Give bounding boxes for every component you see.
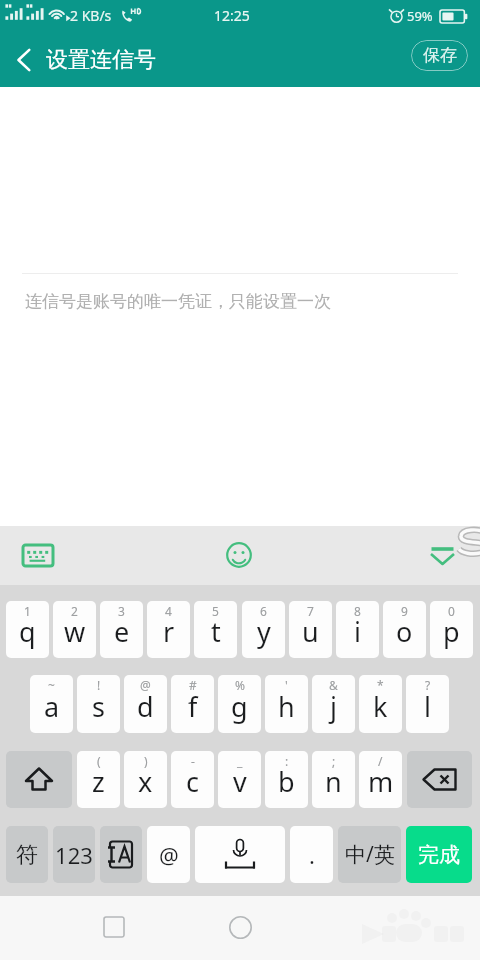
- staticText: 123: [55, 840, 93, 870]
- button[interactable]: -: [171, 751, 214, 808]
- staticText: :: [285, 753, 289, 769]
- staticText: n: [325, 763, 342, 800]
- staticText: b: [278, 763, 295, 800]
- staticText: @: [159, 840, 179, 870]
- button[interactable]: #: [171, 675, 214, 733]
- button[interactable]: 保存: [411, 40, 468, 71]
- button[interactable]: 4: [147, 601, 190, 658]
- staticText: j: [330, 688, 337, 725]
- button[interactable]: ?: [406, 675, 449, 733]
- button[interactable]: Emoji: [222, 538, 256, 572]
- button[interactable]: 符: [6, 826, 48, 883]
- staticText: t: [211, 613, 221, 650]
- staticText: 1: [24, 603, 31, 619]
- button[interactable]: 2: [53, 601, 96, 658]
- button[interactable]: 9: [383, 601, 426, 658]
- staticText: 2: [71, 603, 78, 619]
- button[interactable]: 0: [430, 601, 473, 658]
- staticText: ;: [332, 753, 336, 769]
- button[interactable]: *: [359, 675, 402, 733]
- button[interactable]: Back: [4, 40, 44, 80]
- staticText: #: [189, 677, 197, 693]
- staticText: p: [443, 613, 460, 650]
- staticText: 59%: [407, 7, 433, 25]
- button[interactable]: 中/英: [338, 826, 401, 883]
- staticText: 保存: [423, 45, 457, 66]
- button[interactable]: Recents: [94, 907, 134, 947]
- button[interactable]: &: [312, 675, 355, 733]
- button[interactable]: Backspace: [407, 751, 472, 808]
- button[interactable]: ;: [312, 751, 355, 808]
- staticText: z: [92, 763, 105, 800]
- button[interactable]: 1: [6, 601, 49, 658]
- staticText: 符: [16, 841, 38, 869]
- staticText: c: [186, 763, 199, 800]
- staticText: 9: [401, 603, 408, 619]
- staticText: h: [278, 688, 295, 725]
- button[interactable]: ~: [30, 675, 73, 733]
- button[interactable]: @: [124, 675, 167, 733]
- staticText: ~: [48, 677, 55, 693]
- staticText: 8: [354, 603, 361, 619]
- staticText: 4: [165, 603, 172, 619]
- staticText: 0: [448, 603, 455, 619]
- staticText: l: [424, 688, 431, 725]
- staticText: i: [354, 613, 361, 650]
- button[interactable]: ': [265, 675, 308, 733]
- button[interactable]: 6: [242, 601, 285, 658]
- button[interactable]: /: [359, 751, 402, 808]
- button[interactable]: %: [218, 675, 261, 733]
- staticText: @: [140, 677, 151, 693]
- staticText: a: [44, 688, 60, 725]
- button[interactable]: 7: [289, 601, 332, 658]
- staticText: ': [285, 677, 288, 693]
- button[interactable]: ): [124, 751, 167, 808]
- button[interactable]: _: [218, 751, 261, 808]
- staticText: q: [19, 613, 36, 650]
- staticText: %: [235, 677, 245, 693]
- staticText: v: [233, 763, 247, 800]
- button[interactable]: !: [77, 675, 120, 733]
- staticText: -: [191, 753, 195, 769]
- button[interactable]: 123: [53, 826, 95, 883]
- button[interactable]: @: [147, 826, 190, 883]
- button[interactable]: Hide keyboard: [425, 538, 459, 572]
- button[interactable]: Home: [220, 907, 260, 947]
- staticText: w: [64, 613, 86, 650]
- staticText: _: [237, 753, 243, 769]
- staticText: /: [378, 753, 383, 769]
- staticText: y: [257, 613, 271, 650]
- button[interactable]: :: [265, 751, 308, 808]
- staticText: 连信号是账号的唯一凭证，只能设置一次: [25, 291, 331, 312]
- staticText: 5: [212, 603, 219, 619]
- staticText: s: [92, 688, 105, 725]
- staticText: 完成: [418, 842, 460, 868]
- staticText: 7: [307, 603, 314, 619]
- button[interactable]: Input language: [100, 826, 142, 883]
- staticText: (: [97, 753, 101, 769]
- staticText: m: [368, 763, 394, 800]
- button[interactable]: (: [77, 751, 120, 808]
- staticText: 中/英: [345, 840, 395, 869]
- staticText: !: [97, 677, 101, 693]
- staticText: .: [309, 840, 315, 870]
- staticText: d: [137, 688, 154, 725]
- staticText: u: [302, 613, 319, 650]
- staticText: e: [114, 613, 130, 650]
- button[interactable]: 5: [194, 601, 237, 658]
- button[interactable]: 完成: [406, 826, 472, 883]
- staticText: k: [373, 688, 388, 725]
- button[interactable]: Keyboard layout: [21, 538, 55, 572]
- staticText: 6: [260, 603, 267, 619]
- staticText: 2 KB/s: [70, 6, 112, 25]
- staticText: x: [138, 763, 153, 800]
- staticText: ): [144, 753, 148, 769]
- button[interactable]: 3: [100, 601, 143, 658]
- staticText: 设置连信号: [46, 46, 156, 74]
- staticText: g: [231, 688, 248, 725]
- button[interactable]: Space: [195, 826, 285, 883]
- button[interactable]: .: [290, 826, 333, 883]
- button[interactable]: 8: [336, 601, 379, 658]
- button[interactable]: Shift: [6, 751, 72, 808]
- staticText: 12:25: [214, 6, 250, 25]
